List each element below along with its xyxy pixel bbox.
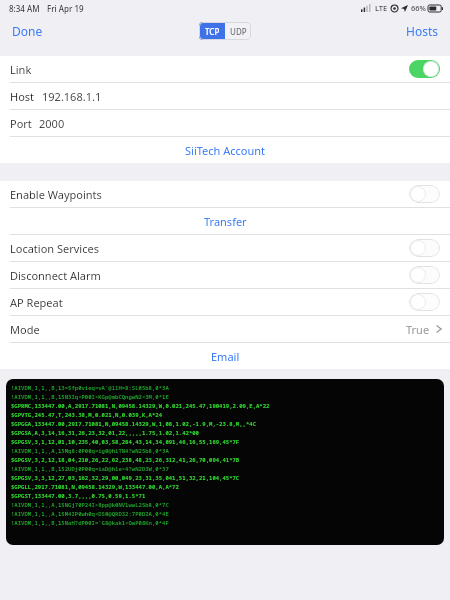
- staticText: $GPGLL,2917.71081,N,09458.14329,W,133447…: [11, 483, 179, 491]
- staticText: Disconnect Alarm: [10, 268, 101, 283]
- staticText: AP Repeat: [10, 295, 63, 310]
- button[interactable]: Off: [409, 293, 440, 311]
- button[interactable]: Enable Waypoints: [0, 181, 450, 207]
- staticText: Hosts: [406, 23, 438, 39]
- staticText: $GPGSV,3,1,12,01,10,235,40,03,58,284,43,…: [11, 438, 240, 446]
- button[interactable]: Port: [0, 110, 450, 136]
- staticText: Enable Waypoints: [10, 187, 102, 202]
- button[interactable]: SiiTech Account: [0, 137, 450, 163]
- staticText: Mode: [10, 322, 40, 337]
- staticText: !AIVDM,1,1,,A,15Mq8:0P00q=ig0@hiTN4?wN25…: [11, 447, 169, 455]
- staticText: !AIVDM,1,1,,B,13=5fp0vieq=vA`@llH=8:SL05…: [11, 384, 169, 392]
- button[interactable]: Disconnect Alarm: [0, 262, 450, 288]
- staticText: Done: [12, 23, 43, 39]
- staticText: $GPRMC,133447.00,A,2917.71081,N,09458.14…: [11, 402, 270, 410]
- staticText: Location Services: [10, 241, 99, 256]
- button[interactable]: Host: [0, 83, 450, 109]
- button[interactable]: UDP: [225, 22, 251, 40]
- staticText: 192.168.1.1: [42, 89, 102, 104]
- button[interactable]: Location Services: [0, 235, 450, 261]
- staticText: !AIVDM,1,1,,B,152UDj0P00q=iaD@hle>4?wN2D…: [11, 465, 169, 473]
- button[interactable]: Hosts: [394, 19, 450, 43]
- staticText: $GPGST,133447.00,3.7,,,,0.75,0.59,1.5*71: [11, 492, 146, 500]
- button[interactable]: Off: [409, 266, 440, 284]
- button[interactable]: Off: [409, 185, 440, 203]
- button[interactable]: !AIVDM,1,1,,B,13=5fp0vieq=vA`@llH=8:SL05…: [6, 379, 444, 545]
- staticText: 66%: [411, 3, 426, 13]
- button[interactable]: TCP: [199, 22, 225, 40]
- staticText: 2000: [39, 116, 65, 131]
- staticText: Fri Apr 19: [47, 3, 84, 14]
- staticText: $GPGSV,3,2,12,18,04,210,26,22,62,238,48,…: [11, 456, 240, 464]
- button[interactable]: Done: [0, 19, 55, 43]
- button[interactable]: Off: [409, 239, 440, 257]
- button[interactable]: Mode: [0, 316, 450, 342]
- staticText: LTE: [375, 3, 388, 13]
- staticText: $GPGSV,3,3,12,27,03,162,32,29,00,049,23,…: [11, 474, 240, 482]
- staticText: 8:34 AM: [9, 3, 40, 14]
- staticText: $GPGGA,133447.00,2917.71081,N,09458.1432…: [11, 420, 257, 428]
- button[interactable]: Link: [0, 56, 450, 82]
- staticText: True: [406, 322, 430, 337]
- button[interactable]: Email: [0, 343, 450, 369]
- staticText: UDP: [230, 26, 247, 37]
- staticText: Link: [10, 62, 32, 77]
- staticText: $GPGSA,A,3,14,16,31,26,23,32,01,22,,,,,1…: [11, 429, 199, 437]
- staticText: TCP: [205, 26, 220, 37]
- staticText: !AIVDM,1,1,,B,15N3Iq<P00I>KGp@mbCQngwN2<…: [11, 393, 169, 401]
- staticText: Email: [211, 349, 240, 364]
- staticText: $GPVTG,245.47,T,243.38,M,0.021,N,0.039,K…: [11, 411, 163, 419]
- staticText: !AIVDM,1,1,,A,15NGj70P24I>8pp@k0NV1wwL25…: [11, 501, 169, 509]
- staticText: SiiTech Account: [185, 143, 266, 158]
- staticText: Host: [10, 89, 35, 104]
- staticText: Port: [10, 116, 32, 131]
- button[interactable]: AP Repeat: [0, 289, 450, 315]
- staticText: !AIVDM,1,1,,A,15M4IP0wh0q<DS0@QRD32:7P0D…: [11, 510, 169, 518]
- button[interactable]: Transfer: [0, 208, 450, 234]
- staticText: !AIVDM,1,1,,B,15NaH?dP00I=`G8@kak1<OwP08…: [11, 519, 169, 527]
- staticText: Transfer: [204, 214, 247, 229]
- button[interactable]: On: [409, 60, 440, 78]
